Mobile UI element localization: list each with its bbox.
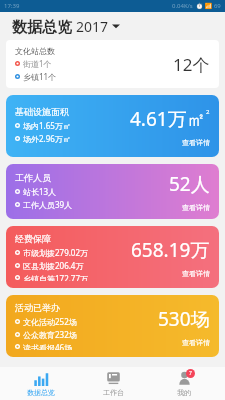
- button[interactable]: 7: [153, 369, 215, 399]
- staticText: 查看详情: [182, 269, 210, 278]
- staticText: 52人: [169, 171, 210, 197]
- staticText: 基础设施面积: [15, 106, 69, 117]
- staticText: 公众教育232场: [23, 329, 77, 340]
- button[interactable]: 经费保障: [6, 226, 219, 288]
- staticText: 文化站总数: [15, 46, 55, 56]
- staticText: 530场: [158, 306, 210, 332]
- staticText: 乡镇自筹172.77万: [23, 273, 89, 281]
- staticText: 站长13人: [23, 186, 57, 197]
- staticText: 数据总览: [27, 388, 55, 397]
- staticText: 街道1个: [23, 58, 52, 69]
- button[interactable]: 文化站总数: [6, 40, 219, 88]
- staticText: 工作台: [103, 388, 124, 397]
- button[interactable]: 活动已举办: [6, 295, 219, 357]
- staticText: 文化活动252场: [23, 316, 77, 327]
- staticText: 经费保障: [15, 233, 51, 244]
- staticText: 查看详情: [182, 338, 210, 347]
- staticText: 17:39: [4, 2, 20, 10]
- staticText: 读书看报46场: [23, 342, 73, 350]
- staticText: 活动已举办: [15, 302, 60, 313]
- staticText: 我的: [177, 388, 191, 397]
- staticText: 工作人员39人: [23, 199, 73, 210]
- staticText: 查看详情: [182, 138, 210, 147]
- staticText: 场外2.96万㎡: [23, 133, 71, 144]
- staticText: 2: [206, 108, 210, 116]
- staticText: 区县划拨206.4万: [23, 260, 84, 271]
- button[interactable]: 工作人员: [6, 164, 219, 219]
- button[interactable]: 数据总览: [10, 369, 72, 399]
- button[interactable]: 工作台: [82, 369, 144, 399]
- staticText: 7: [189, 370, 192, 377]
- staticText: 场内1.65万㎡: [23, 120, 71, 131]
- staticText: 工作人员: [15, 172, 51, 183]
- staticText: 4.61万㎡: [130, 106, 206, 132]
- staticText: 乡镇11个: [23, 71, 57, 82]
- staticText: 0.04K/s ⏱ 📶 69: [172, 2, 221, 10]
- staticText: 12个: [173, 53, 210, 76]
- staticText: 2017: [76, 17, 112, 36]
- staticText: 数据总览: [12, 16, 76, 36]
- staticText: 658.19万: [131, 237, 210, 263]
- staticText: 市级划拨279.02万: [23, 247, 89, 258]
- button[interactable]: 基础设施面积: [6, 95, 219, 157]
- staticText: 查看详情: [182, 203, 210, 212]
